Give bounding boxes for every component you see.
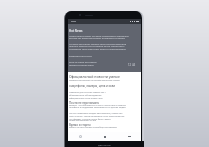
staticText: Новинки для России Зимой 2021 [69, 91, 106, 94]
staticText: 12 44 [128, 63, 136, 67]
staticText: официальные источники сети [69, 97, 103, 100]
staticText: камера. Что обновилось и как в Android в… [69, 104, 126, 107]
staticText: работа на сети каким-то вообще скачивани… [69, 126, 117, 129]
staticText: ullamco laboris nisi ut aliquip ex ea co… [69, 44, 125, 47]
staticText: Мы его новейший раздел автономный, самый… [69, 112, 123, 115]
staticText: Excepteur sint occa [69, 54, 92, 57]
button[interactable]: Recents [117, 132, 141, 141]
staticText: Мой Android. Там её возможно столь много… [69, 115, 125, 118]
staticText: новое обновление тут же [69, 119, 96, 122]
staticText: Ut enim ad minim veniam quis nostrud exe… [69, 42, 127, 45]
staticText: elit sed do eiusmod tempor incididunt ut… [69, 36, 125, 39]
staticText: Время и старты [69, 123, 91, 127]
staticText: consequat duis aute irure dolor in repre… [69, 47, 126, 50]
staticText: объявленные Обнародовано [69, 94, 102, 97]
staticText: Lorem ipsum dolor sit amet consectetur a… [69, 34, 129, 37]
staticText: телефона в поддержке зависимости от друг… [69, 106, 126, 109]
staticText: Hot News [69, 29, 83, 33]
staticText: новинки технологий на российском рынке M… [69, 79, 120, 82]
staticText: Sunt in culpa qui officia [69, 60, 97, 63]
button[interactable]: Back [68, 132, 93, 141]
staticText: Почти не переломить [69, 101, 100, 105]
staticText: ДЕТАЛЬНО [98, 143, 111, 146]
staticText: смартфоны, камеры, цена и хаки [69, 84, 115, 88]
staticText: что формат Android полно базы самый [69, 118, 111, 121]
staticText: Официальный новости умные [69, 74, 120, 79]
staticText: deserunt mollit anim [69, 63, 94, 66]
button[interactable]: Home [93, 132, 117, 141]
